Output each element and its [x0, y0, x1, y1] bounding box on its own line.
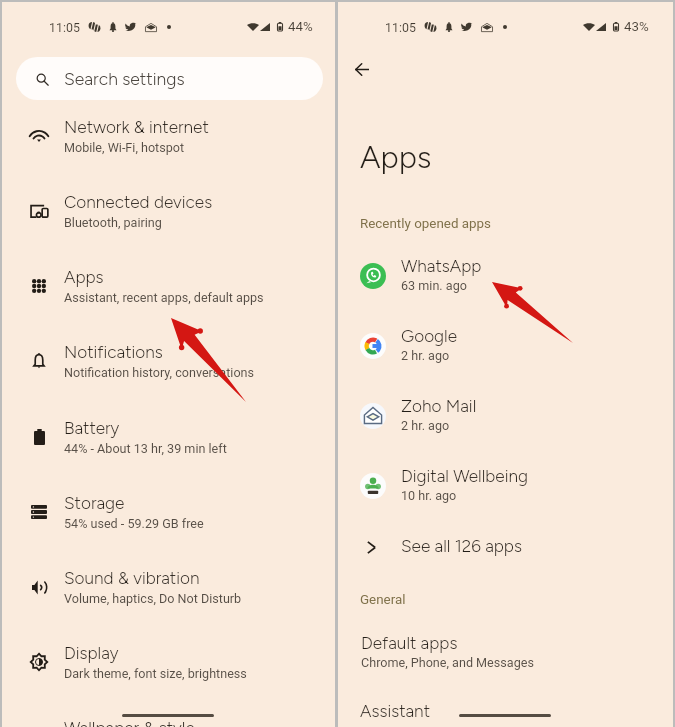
staticText: Search settings: [64, 68, 185, 89]
staticText: Notifications: [64, 342, 163, 363]
staticText: See all 126 apps: [401, 536, 522, 557]
button[interactable]: Search settings: [16, 57, 323, 100]
staticText: Digital Wellbeing: [401, 466, 528, 487]
button[interactable]: Connected devices: [2, 192, 335, 254]
staticText: Assistant, recent apps, default apps: [64, 290, 264, 305]
button[interactable]: Sound & vibration: [2, 568, 335, 630]
staticText: Display: [64, 643, 119, 664]
button[interactable]: See all 126 apps: [338, 530, 673, 566]
button[interactable]: Display: [2, 643, 335, 705]
staticText: Chrome, Phone, and Messages: [361, 655, 534, 670]
staticText: 11:05: [49, 20, 80, 35]
button[interactable]: Zoho Mail: [338, 396, 673, 452]
button[interactable]: Back: [340, 47, 384, 91]
button[interactable]: Notifications: [2, 342, 335, 404]
button[interactable]: WhatsApp: [338, 256, 673, 312]
staticText: Volume, haptics, Do Not Disturb: [64, 591, 242, 606]
staticText: Storage: [64, 493, 125, 514]
button[interactable]: Digital Wellbeing: [338, 466, 673, 522]
staticText: Connected devices: [64, 192, 213, 213]
staticText: 44%: [288, 19, 313, 35]
staticText: Recently opened apps: [360, 216, 492, 232]
button[interactable]: Google: [338, 326, 673, 382]
staticText: Zoho Mail: [401, 396, 477, 417]
staticText: Notification history, conversations: [64, 365, 255, 380]
staticText: Bluetooth, pairing: [64, 215, 162, 230]
staticText: Default apps: [361, 633, 458, 654]
staticText: Google: [401, 326, 458, 347]
staticText: Apps: [360, 139, 432, 176]
staticText: Dark theme, font size, brightness: [64, 666, 247, 681]
button[interactable]: Apps: [2, 267, 335, 329]
button[interactable]: Default apps: [338, 630, 673, 678]
button[interactable]: Storage: [2, 493, 335, 555]
staticText: 63 min. ago: [401, 278, 467, 293]
staticText: WhatsApp: [401, 256, 482, 277]
staticText: 2 hr. ago: [401, 348, 450, 363]
staticText: 11:05: [385, 20, 416, 35]
staticText: 10 hr. ago: [401, 488, 457, 503]
staticText: Wallpaper & style: [64, 718, 195, 727]
staticText: Network & internet: [64, 117, 209, 138]
staticText: Sound & vibration: [64, 568, 200, 589]
staticText: 54% used - 59.29 GB free: [64, 516, 204, 531]
staticText: Battery: [64, 418, 120, 439]
staticText: General: [360, 592, 406, 608]
button[interactable]: Battery: [2, 418, 335, 480]
staticText: Apps: [64, 267, 104, 288]
staticText: Assistant: [360, 701, 430, 722]
staticText: 44% - About 13 hr, 39 min left: [64, 441, 227, 456]
staticText: 43%: [624, 19, 649, 35]
button[interactable]: Network & internet: [2, 117, 335, 179]
staticText: Mobile, Wi-Fi, hotspot: [64, 140, 185, 155]
staticText: 2 hr. ago: [401, 418, 450, 433]
